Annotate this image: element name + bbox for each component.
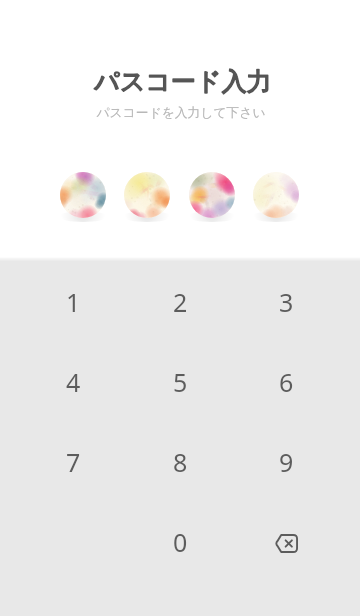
other: Delete [274, 534, 298, 553]
staticText: 9 [279, 445, 294, 479]
button[interactable]: 2 [130, 264, 230, 340]
staticText: 0 [173, 525, 188, 559]
button[interactable]: 0 [130, 504, 230, 580]
staticText: 5 [173, 365, 188, 399]
button[interactable]: 1 [23, 264, 123, 340]
button[interactable]: 8 [130, 424, 230, 500]
button[interactable]: 5 [130, 344, 230, 420]
button[interactable]: 7 [23, 424, 123, 500]
button[interactable]: Delete [236, 504, 336, 580]
staticText: パスコードを入力して下さい [96, 105, 266, 121]
staticText: 8 [173, 445, 188, 479]
button[interactable]: 4 [23, 344, 123, 420]
button[interactable]: 6 [236, 344, 336, 420]
staticText: 7 [66, 445, 81, 479]
staticText: 6 [279, 365, 294, 399]
staticText: パスコード入力 [94, 66, 272, 97]
staticText: パスコード入力 [94, 66, 272, 97]
staticText: 2 [173, 285, 188, 319]
staticText: 3 [279, 285, 294, 319]
button[interactable]: 3 [236, 264, 336, 340]
staticText: 1 [66, 285, 81, 319]
staticText: 4 [66, 365, 81, 399]
button[interactable]: 9 [236, 424, 336, 500]
